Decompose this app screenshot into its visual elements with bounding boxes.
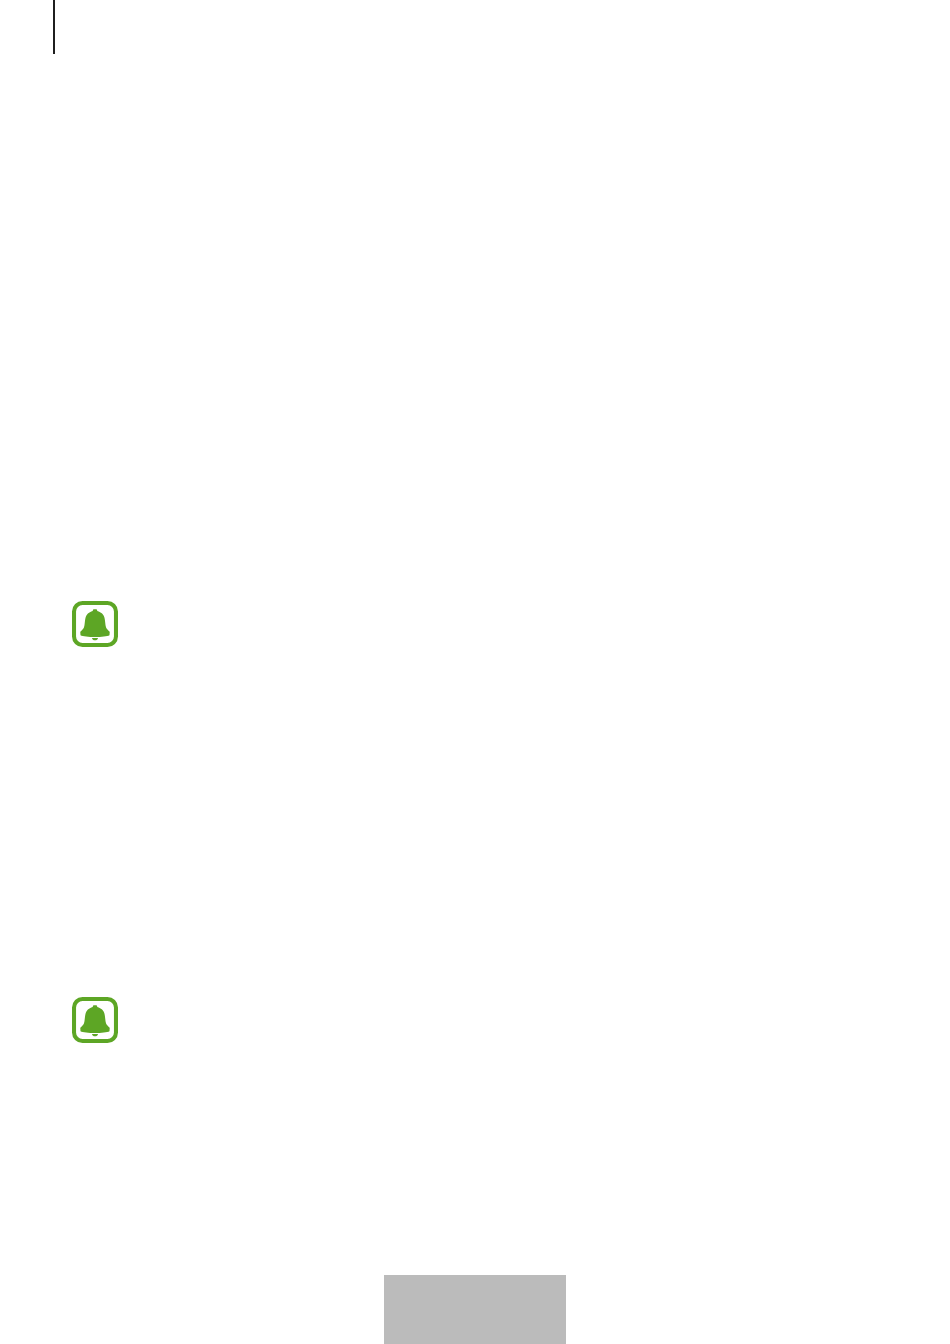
button[interactable]: Notifications (72, 601, 118, 647)
button[interactable]: Notifications (72, 997, 118, 1043)
